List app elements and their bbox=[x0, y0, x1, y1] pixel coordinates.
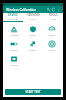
button[interactable]: Battery bbox=[5, 40, 23, 52]
staticText: Module bbox=[10, 64, 18, 67]
staticText: DEVICE bbox=[8, 13, 18, 17]
staticText: 7 active bbox=[29, 18, 37, 21]
staticText: TOOLS bbox=[48, 13, 58, 17]
button[interactable]: DEVICE bbox=[3, 13, 23, 21]
staticText: Battery bbox=[10, 49, 18, 52]
button[interactable]: Search bbox=[46, 7, 51, 12]
button[interactable]: SENSORS bbox=[23, 13, 43, 21]
button[interactable]: Refresh bbox=[51, 7, 56, 12]
staticText: Ready bbox=[50, 18, 57, 21]
staticText: Signal bbox=[29, 49, 36, 52]
staticText: Target bbox=[48, 49, 55, 52]
staticText: START TEST bbox=[25, 90, 41, 94]
button[interactable]: Antenna bbox=[5, 25, 23, 37]
button[interactable]: Signal bbox=[23, 40, 42, 52]
staticText: SENSORS bbox=[27, 13, 40, 17]
button[interactable]: More options bbox=[56, 8, 60, 12]
button[interactable]: Module bbox=[5, 55, 23, 67]
button[interactable]: Shield bbox=[23, 25, 42, 37]
button[interactable]: Gauge bbox=[42, 25, 61, 37]
button[interactable]: Target bbox=[42, 40, 61, 52]
staticText: Shield bbox=[29, 34, 36, 37]
staticText: Gauge bbox=[48, 34, 55, 37]
button[interactable]: START TEST bbox=[5, 89, 61, 95]
staticText: Connected bbox=[7, 18, 19, 21]
staticText: Wireless Calibration bbox=[6, 8, 46, 12]
button[interactable]: TOOLS bbox=[43, 13, 63, 21]
staticText: Antenna bbox=[10, 34, 19, 37]
